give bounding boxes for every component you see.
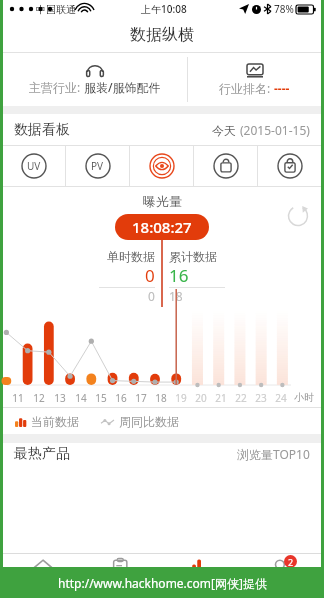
staticText: 上午10:08 (141, 2, 187, 16)
staticText: 订单管理 (102, 581, 142, 594)
staticText: 数据纵横 (130, 25, 194, 45)
button[interactable]: 18:08:27 (132, 217, 192, 237)
staticText: 数据看板 (14, 121, 70, 139)
staticText: 21 (215, 391, 227, 405)
staticText: 周同比数据 (119, 414, 179, 429)
staticText: 中国联通 (36, 3, 76, 16)
button[interactable]: 数据纵横 (161, 554, 241, 598)
button[interactable]: PV (66, 146, 129, 186)
button[interactable]: 支付订单 (258, 146, 321, 186)
staticText: 浏览量TOP10 (237, 446, 310, 462)
staticText: ---- (274, 80, 290, 96)
staticText: 15 (95, 391, 107, 405)
staticText: 14 (75, 391, 87, 405)
staticText: 22 (235, 391, 247, 405)
button[interactable]: 当前数据 (15, 414, 79, 429)
staticText: 0 (148, 288, 155, 304)
button[interactable]: UV (3, 146, 65, 186)
button[interactable]: 曝光量 (130, 146, 193, 186)
button[interactable]: 我的速卖通 (241, 554, 321, 598)
staticText: 23 (255, 391, 267, 405)
staticText: 当前数据 (31, 414, 79, 429)
staticText: 24 (275, 391, 287, 405)
button[interactable]: 主营行业: (3, 53, 187, 106)
button[interactable]: 订单数 (194, 146, 257, 186)
staticText: 13 (54, 391, 66, 405)
staticText: 曝光量 (143, 193, 182, 209)
staticText: 今天 (212, 122, 240, 138)
staticText: 16 (169, 264, 189, 287)
staticText: 11 (12, 391, 24, 405)
staticText: 服装/服饰配件 (84, 79, 161, 95)
button[interactable]: 订单管理 (82, 554, 161, 598)
staticText: 数据纵横 (181, 581, 221, 594)
staticText: 78% (274, 2, 294, 16)
staticText: 19 (175, 391, 187, 405)
button[interactable]: 今天 (212, 122, 310, 138)
staticText: 小时 (294, 391, 314, 404)
staticText: 18 (169, 288, 183, 304)
button[interactable]: 行业排名: (188, 53, 321, 106)
staticText: 单时数据 (107, 249, 155, 264)
staticText: 主营行业: (29, 79, 84, 95)
staticText: http://www.hackhome.com[网侠]提供 (58, 575, 267, 591)
staticText: 最热产品 (14, 445, 70, 463)
staticText: (2015-01-15) (240, 122, 310, 138)
staticText: 我的速卖通 (256, 581, 306, 594)
staticText: 0 (145, 264, 155, 287)
staticText: PV (91, 159, 104, 173)
staticText: UV (27, 159, 41, 173)
staticText: 20 (195, 391, 207, 405)
button[interactable]: 首页 (3, 554, 82, 598)
staticText: 18:08:27 (132, 217, 192, 237)
staticText: 12 (33, 391, 45, 405)
staticText: 2 (288, 556, 294, 568)
button[interactable]: 周同比数据 (101, 414, 179, 429)
staticText: 17 (135, 391, 147, 405)
staticText: 行业排名: (219, 80, 274, 96)
staticText: 18 (155, 391, 167, 405)
staticText: 累计数据 (169, 249, 217, 264)
button[interactable]: 刷新 (287, 205, 309, 227)
staticText: 16 (115, 391, 127, 405)
